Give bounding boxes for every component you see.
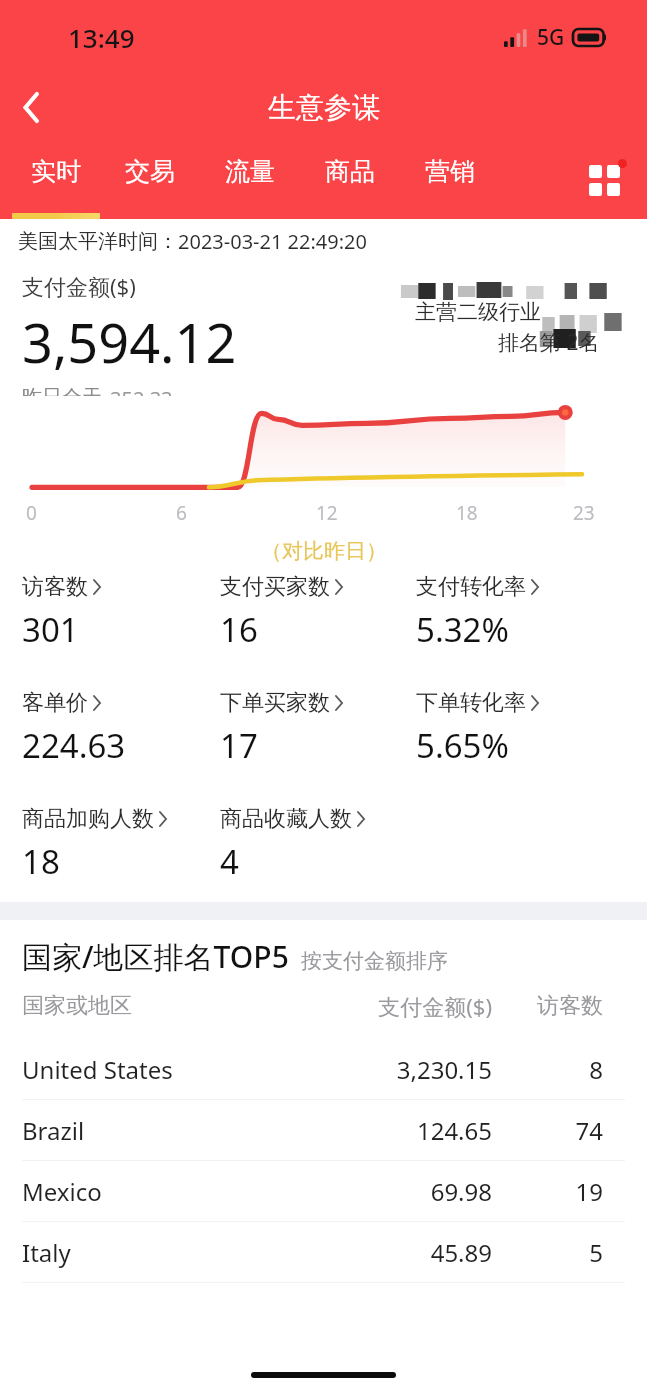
staticText: Italy	[22, 1236, 292, 1269]
staticText: 5.32%	[416, 607, 509, 652]
staticText: 实时	[31, 156, 81, 187]
staticText: （对比昨日）	[261, 538, 387, 564]
button[interactable]: 商品加购人数	[22, 803, 167, 881]
button[interactable]: Industry ranking	[391, 269, 639, 355]
staticText: 美国太平洋时间：	[18, 229, 178, 254]
staticText: 3,230.15	[292, 1053, 492, 1086]
staticText: United States	[22, 1053, 292, 1086]
staticText: 访客数	[22, 573, 88, 601]
staticText: Brazil	[22, 1114, 292, 1147]
staticText: 支付转化率	[416, 573, 526, 601]
staticText: 4	[220, 839, 239, 881]
staticText: 18	[22, 839, 60, 881]
button[interactable]: 下单转化率	[416, 687, 539, 768]
staticText: 19	[492, 1175, 603, 1208]
button[interactable]: 交易	[100, 140, 200, 202]
staticText: 主营二级行业	[415, 299, 541, 325]
staticText: 301	[22, 607, 79, 652]
staticText: 45.89	[292, 1236, 492, 1269]
button[interactable]: 下单买家数	[220, 687, 343, 768]
button[interactable]: Mexico	[0, 1161, 647, 1222]
staticText: 下单转化率	[416, 689, 526, 717]
button[interactable]: 商品收藏人数	[220, 803, 365, 881]
staticText: 昨日全天	[22, 385, 102, 396]
staticText: 13:49	[68, 20, 135, 55]
staticText: 18	[456, 500, 478, 526]
button[interactable]: 流量	[200, 140, 300, 202]
staticText: 客单价	[22, 689, 88, 717]
staticText: 3,594.12	[22, 305, 237, 379]
button[interactable]: Back	[0, 76, 62, 138]
staticText: 5G	[537, 23, 565, 52]
button[interactable]: Brazil	[0, 1100, 647, 1161]
staticText: 74	[492, 1114, 603, 1147]
staticText: 商品	[325, 156, 375, 187]
staticText: 生意参谋	[268, 90, 380, 125]
staticText: 16	[220, 607, 258, 652]
staticText: 商品收藏人数	[220, 805, 352, 833]
button[interactable]: 支付买家数	[220, 571, 343, 652]
staticText: 排名第 2名	[498, 328, 600, 357]
button[interactable]: More tabs	[575, 151, 633, 209]
staticText: 支付金额($)	[22, 271, 136, 301]
staticText: 124.65	[292, 1114, 492, 1147]
staticText: Mexico	[22, 1175, 292, 1208]
staticText: 12	[316, 500, 338, 526]
staticText: 营销	[425, 156, 475, 187]
button[interactable]: 商品	[300, 140, 400, 202]
staticText: 国家或地区	[22, 992, 292, 1020]
staticText: 5.65%	[416, 723, 509, 768]
button[interactable]: Italy	[0, 1222, 647, 1283]
staticText: 访客数	[492, 992, 603, 1020]
staticText: 交易	[125, 156, 175, 187]
staticText: 6	[176, 500, 187, 526]
staticText: 5	[492, 1236, 603, 1269]
button[interactable]: 实时	[12, 140, 100, 202]
staticText: 按支付金额排序	[301, 948, 448, 974]
staticText: 17	[220, 723, 258, 768]
staticText: 224.63	[22, 723, 126, 768]
staticText: 商品加购人数	[22, 805, 154, 833]
staticText: 23	[573, 500, 595, 526]
staticText: 支付金额($)	[292, 991, 492, 1021]
button[interactable]: 客单价	[22, 687, 126, 768]
staticText: 8	[492, 1053, 603, 1086]
staticText: 0	[26, 500, 37, 526]
staticText: 2023-03-21 22:49:20	[178, 228, 367, 255]
button[interactable]: 访客数	[22, 571, 101, 652]
button[interactable]: 营销	[400, 140, 500, 202]
staticText: 支付买家数	[220, 573, 330, 601]
staticText: 69.98	[292, 1175, 492, 1208]
staticText: 国家/地区排名TOP5	[22, 936, 289, 977]
staticText: 352.33	[110, 385, 173, 396]
button[interactable]: United States	[0, 1039, 647, 1100]
button[interactable]: 支付转化率	[416, 571, 539, 652]
staticText: 下单买家数	[220, 689, 330, 717]
staticText: 流量	[225, 156, 275, 187]
